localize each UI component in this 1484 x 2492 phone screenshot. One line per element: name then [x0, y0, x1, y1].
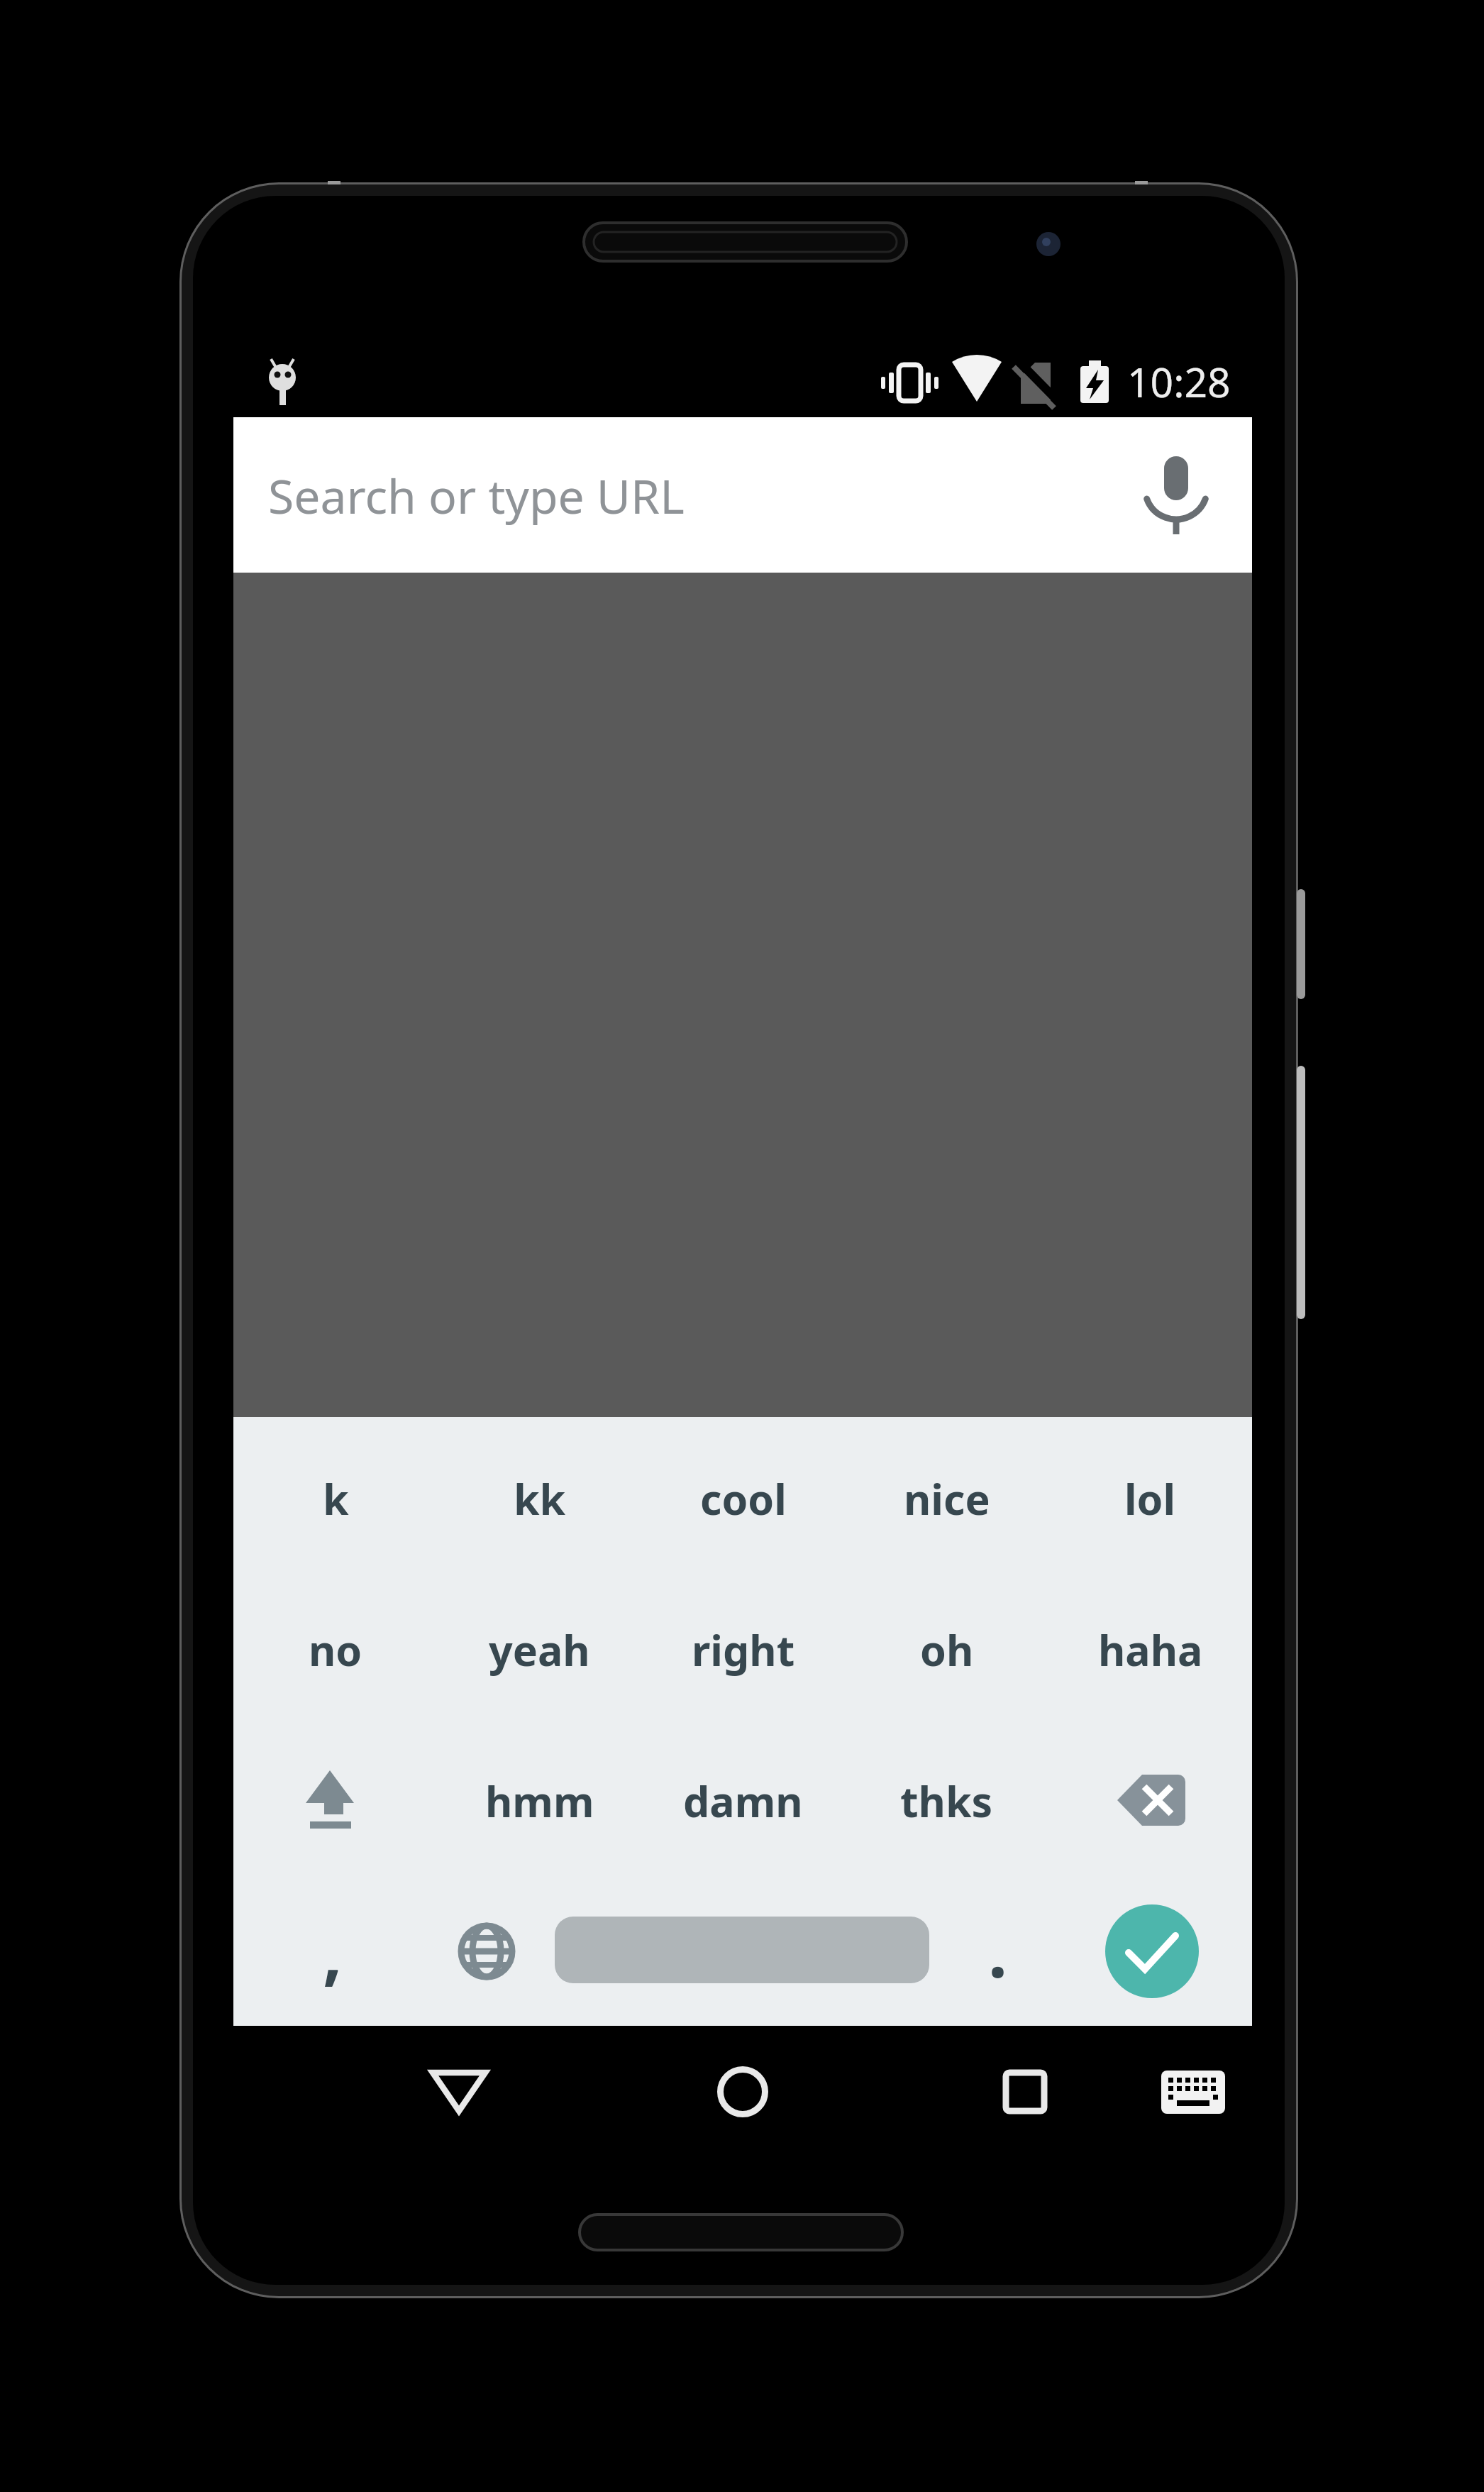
button[interactable]: damn: [641, 1725, 845, 1876]
button[interactable]: ,: [276, 1876, 389, 2026]
button[interactable]: [968, 2036, 1082, 2147]
staticText: .: [988, 1904, 1007, 1997]
staticText: ,: [323, 1904, 343, 1997]
button[interactable]: [1105, 1904, 1199, 1998]
staticText: yeah: [489, 1621, 590, 1678]
button[interactable]: right: [641, 1574, 845, 1725]
staticText: no: [309, 1621, 362, 1678]
staticText: k: [323, 1470, 349, 1527]
button[interactable]: oh: [845, 1574, 1048, 1725]
staticText: lol: [1124, 1470, 1176, 1527]
button[interactable]: [1048, 1725, 1252, 1876]
staticText: nice: [904, 1470, 990, 1527]
button[interactable]: .: [941, 1876, 1054, 2026]
button[interactable]: [555, 1917, 929, 1983]
button[interactable]: yeah: [438, 1574, 641, 1725]
button[interactable]: Search or type URL: [233, 417, 1252, 573]
button[interactable]: [1137, 456, 1215, 534]
button[interactable]: [686, 2036, 799, 2147]
staticText: right: [692, 1621, 795, 1678]
staticText: haha: [1098, 1621, 1203, 1678]
staticText: hmm: [485, 1772, 594, 1829]
staticText: 10:28: [1127, 354, 1231, 409]
staticText: Search or type URL: [268, 463, 685, 527]
staticText: cool: [700, 1470, 787, 1527]
button[interactable]: [453, 1917, 521, 1985]
staticText: damn: [683, 1772, 803, 1829]
button[interactable]: [1147, 2036, 1239, 2147]
staticText: kk: [514, 1470, 566, 1527]
button[interactable]: haha: [1048, 1574, 1252, 1725]
button[interactable]: hmm: [438, 1725, 641, 1876]
staticText: oh: [920, 1621, 974, 1678]
button[interactable]: k: [233, 1423, 438, 1574]
button[interactable]: [402, 2036, 516, 2147]
button[interactable]: kk: [438, 1423, 641, 1574]
button[interactable]: lol: [1048, 1423, 1252, 1574]
staticText: thks: [900, 1772, 993, 1829]
button[interactable]: [233, 1725, 438, 1876]
button[interactable]: nice: [845, 1423, 1048, 1574]
button[interactable]: cool: [641, 1423, 845, 1574]
button[interactable]: thks: [845, 1725, 1048, 1876]
button[interactable]: no: [233, 1574, 438, 1725]
